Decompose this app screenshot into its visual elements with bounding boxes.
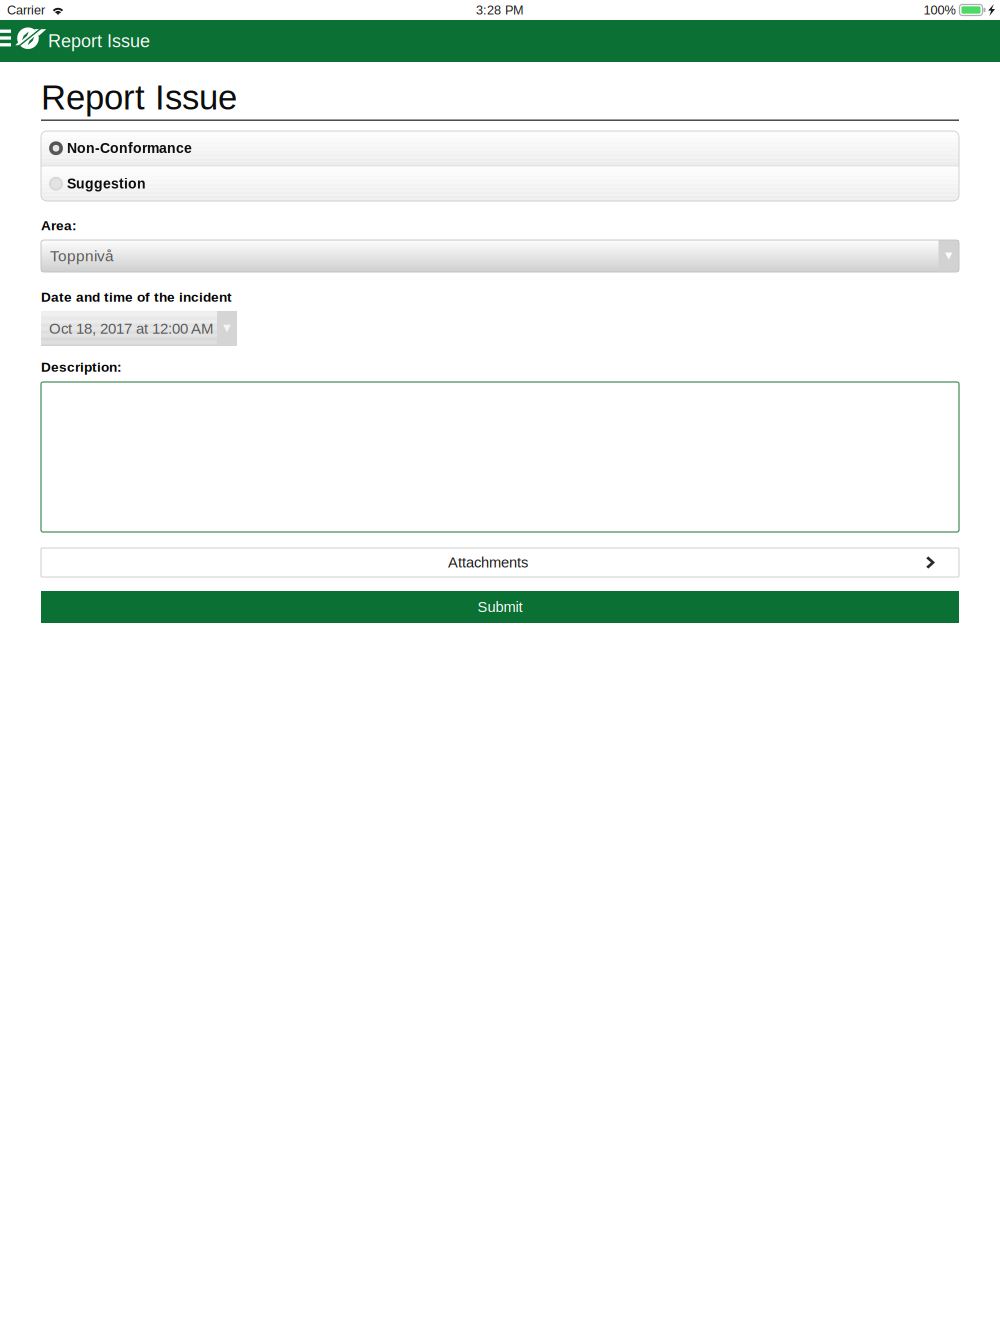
button[interactable]: Submit <box>41 591 959 623</box>
staticText: Report Issue <box>41 78 237 117</box>
staticText: Non-Conformance <box>67 140 192 156</box>
button[interactable]: Suggestion <box>41 166 959 201</box>
button[interactable]: Oct 18, 2017 at 12:00 AM <box>41 311 237 346</box>
staticText: Date and time of the incident <box>41 289 232 305</box>
staticText: 100% <box>923 3 955 17</box>
button[interactable]: Attachments <box>41 548 959 577</box>
button[interactable]: Menu <box>0 17 11 65</box>
staticText: Description: <box>41 359 122 375</box>
staticText: Submit <box>477 599 522 615</box>
button[interactable]: Non-Conformance <box>41 131 959 165</box>
staticText: Report Issue <box>48 31 150 51</box>
staticText: Oct 18, 2017 at 12:00 AM <box>49 320 213 337</box>
staticText: Suggestion <box>67 176 146 191</box>
button[interactable]: Toppnivå <box>41 240 959 272</box>
staticText: 3:28 PM <box>476 3 524 17</box>
staticText: Carrier <box>7 3 45 17</box>
staticText: Attachments <box>448 554 528 571</box>
staticText: Toppnivå <box>50 247 114 264</box>
staticText: Area: <box>41 218 77 233</box>
